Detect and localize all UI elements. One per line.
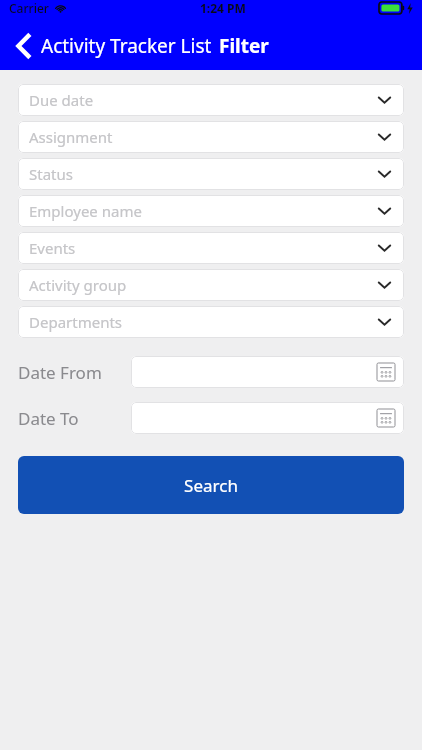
staticText: 1:24 PM	[200, 0, 246, 16]
button[interactable]: Due date	[18, 84, 404, 116]
staticText: Date To	[18, 407, 131, 430]
button[interactable]: Search	[18, 456, 404, 514]
staticText: Assignment	[29, 127, 113, 147]
staticText: Date From	[18, 361, 131, 384]
button[interactable]: Employee name	[18, 195, 404, 227]
button[interactable]: Events	[18, 232, 404, 264]
button[interactable]: Activity group	[18, 269, 404, 301]
staticText: Filter	[219, 33, 269, 59]
button[interactable]: Date From	[131, 356, 404, 388]
staticText: Events	[29, 238, 76, 258]
staticText: Employee name	[29, 201, 142, 221]
button[interactable]: Back	[6, 29, 40, 63]
staticText: Due date	[29, 90, 94, 110]
staticText: Status	[29, 164, 73, 184]
staticText: Activity Tracker List	[41, 33, 212, 59]
staticText: Search	[184, 474, 238, 497]
button[interactable]: Date To	[131, 402, 404, 434]
staticText: Activity group	[29, 275, 127, 295]
button[interactable]: Departments	[18, 306, 404, 338]
staticText: Carrier	[9, 0, 49, 16]
button[interactable]: Assignment	[18, 121, 404, 153]
staticText: Departments	[29, 312, 123, 332]
button[interactable]: Status	[18, 158, 404, 190]
